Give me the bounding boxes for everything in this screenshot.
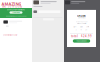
staticText: EXTRA 20% OFF MEMBERS (7, 9, 25, 11)
staticText: ends tonight use code SAVE20 (5, 15, 26, 17)
staticText: CONFIRMED (77, 17, 85, 19)
staticText: $19.99 members only (3, 34, 18, 36)
staticText: ORDER (77, 14, 86, 17)
button[interactable]: TRACK ORDER (73, 39, 90, 43)
staticText: TRACK ORDER (76, 40, 86, 42)
staticText: SHOP NOW (12, 12, 19, 13)
staticText: order no. A1029 (75, 21, 87, 23)
staticText: total $24.99 (71, 34, 92, 38)
button[interactable]: EXTRA 20% OFF MEMBERS (0, 8, 32, 18)
staticText: 2d (85, 29, 87, 31)
staticText: M (80, 29, 81, 31)
staticText: delivery details (76, 23, 86, 24)
staticText: QTY (74, 26, 77, 28)
staticText: save 50% today (2, 5, 22, 8)
staticText: AMAZING DEAL (1, 1, 21, 12)
staticText: SIZE (80, 26, 83, 28)
staticText: SHIP (86, 26, 89, 28)
